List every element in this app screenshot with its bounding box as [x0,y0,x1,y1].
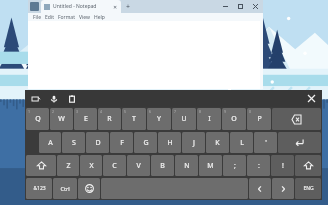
button[interactable]: 4 [98,108,121,130]
staticText: Z [66,161,71,171]
staticText: P [257,114,262,124]
button[interactable]: File [31,14,43,21]
button[interactable]: Notepad icon [30,2,39,11]
button[interactable]: Close [248,0,263,13]
staticText: R [107,114,112,124]
staticText: O [231,114,237,124]
staticText: 2 [52,109,55,114]
button[interactable]: bksp [272,108,321,130]
button[interactable]: Format [56,14,77,21]
button[interactable]: A [39,132,61,153]
staticText: : [258,161,260,171]
button[interactable]: 0 [247,108,271,130]
button[interactable]: 8 [197,108,221,130]
button[interactable]: Clipboard [66,93,77,104]
staticText: T [132,114,136,124]
staticText: ; [234,161,236,171]
button[interactable]: ! [271,155,294,176]
button[interactable]: 1 [26,108,49,130]
staticText: K [215,138,220,148]
button[interactable]: 3 [74,108,97,130]
staticText: H [167,138,173,148]
staticText: D [95,138,101,148]
button[interactable]: Emoji [78,178,100,199]
button[interactable]: ; [223,155,246,176]
button[interactable]: V [127,155,150,176]
staticText: 5 [124,109,127,114]
staticText: A [48,138,53,148]
staticText: G [143,138,149,148]
staticText: + [126,2,131,11]
button[interactable]: Edit [43,14,56,21]
button[interactable]: New tab [124,2,133,11]
button[interactable]: Help [92,14,107,21]
staticText: 1 [28,109,31,114]
button[interactable]: ENG [295,178,321,199]
staticText: 6 [149,109,152,114]
button[interactable]: G [134,132,157,153]
button[interactable]: 2 [50,108,73,130]
staticText: Format [58,14,75,21]
button[interactable]: C [103,155,126,176]
staticText: ! [282,161,284,171]
button[interactable]: Ctrl [53,178,77,199]
staticText: 4 [100,109,103,114]
button[interactable]: shift [26,155,56,176]
staticText: C [112,161,117,171]
button[interactable]: S [62,132,85,153]
button[interactable]: B [151,155,174,176]
button[interactable]: Voice typing [48,93,59,104]
button[interactable]: D [86,132,109,153]
staticText: View [79,14,90,21]
button[interactable]: Keyboard layout [30,93,41,104]
staticText: L [240,138,244,148]
staticText: X [89,161,94,171]
button[interactable]: : [247,155,270,176]
staticText: &123 [33,185,46,192]
button[interactable]: Close keyboard [300,90,322,107]
staticText: Y [157,114,161,124]
staticText: File [33,14,41,21]
staticText: M [207,161,214,171]
button[interactable]: 7 [172,108,196,130]
staticText: I [208,114,211,124]
button[interactable]: F [110,132,133,153]
staticText: V [136,161,141,171]
button[interactable]: 6 [147,108,171,130]
staticText: 8 [199,109,202,114]
button[interactable]: Maximize [233,0,248,13]
button[interactable]: shift [295,155,321,176]
button[interactable]: ' [254,132,277,153]
button[interactable]: Minimize [218,0,233,13]
button[interactable]: 5 [122,108,146,130]
staticText: B [160,161,165,171]
staticText: Help [94,14,105,21]
button[interactable]: Z [57,155,79,176]
button[interactable]: 9 [222,108,246,130]
staticText: F [120,138,124,148]
button[interactable]: J [182,132,205,153]
staticText: Ctrl [60,185,70,192]
staticText: W [58,114,65,124]
staticText: E [84,114,88,124]
button[interactable]: H [158,132,181,153]
button[interactable]: enter [278,132,321,153]
staticText: ✕ [113,4,118,10]
staticText: Q [35,114,41,124]
button[interactable]: Left [249,178,271,199]
button[interactable]: K [206,132,229,153]
button[interactable]: View [77,14,92,21]
button[interactable]: Untitled - Notepad [41,0,121,13]
button[interactable]: &123 [26,178,52,199]
staticText: 7 [174,109,177,114]
staticText: 0 [249,109,252,114]
button[interactable]: N [175,155,198,176]
staticText: Untitled - Notepad [53,3,97,10]
staticText: U [181,114,187,124]
button[interactable]: Right [272,178,294,199]
button[interactable]: M [199,155,222,176]
button[interactable]: L [230,132,253,153]
button[interactable]: X [80,155,102,176]
staticText: J [193,138,195,148]
